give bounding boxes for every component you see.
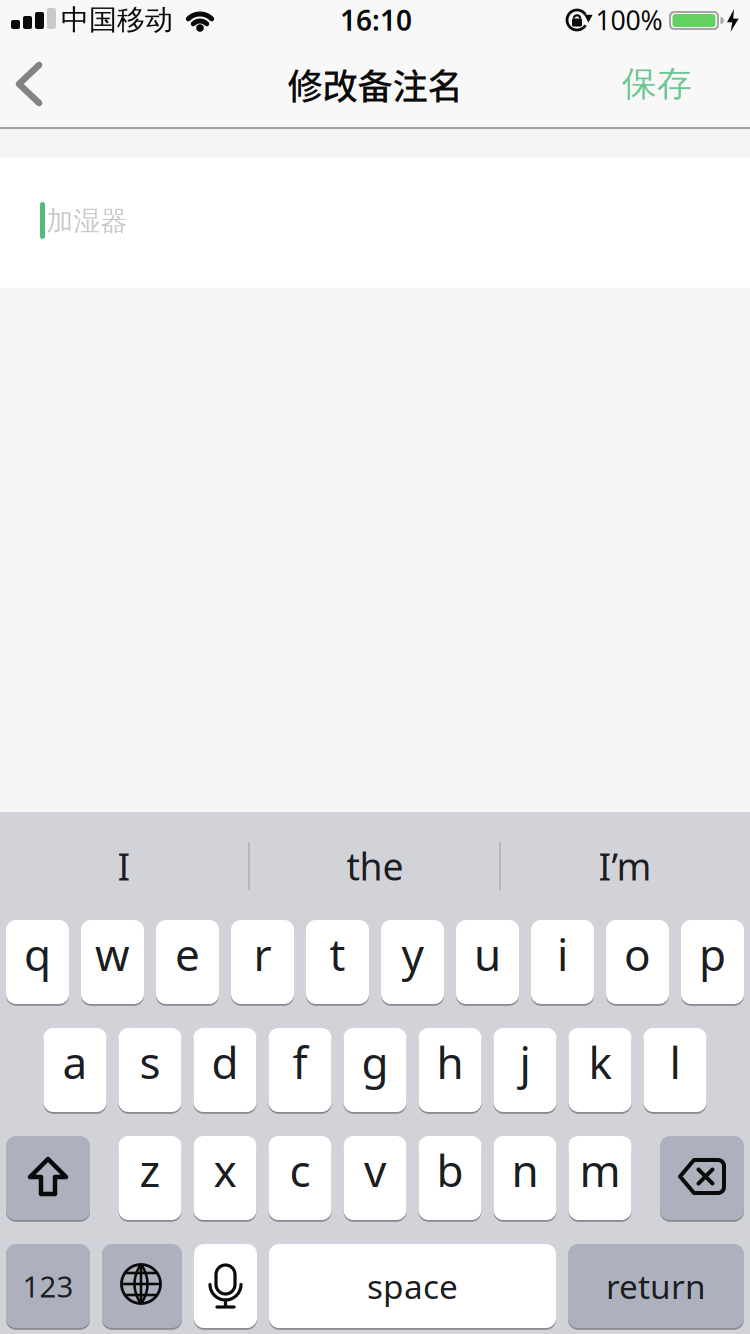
staticText: f — [292, 1033, 307, 1091]
staticText: i — [557, 925, 568, 983]
staticText: the — [346, 841, 403, 891]
staticText: 123 — [22, 1266, 73, 1305]
staticText: g — [361, 1033, 388, 1091]
staticText: w — [95, 925, 130, 983]
staticText: t — [329, 925, 345, 983]
staticText: k — [588, 1033, 611, 1091]
staticText: 中国移动 — [61, 3, 173, 37]
staticText: return — [606, 1264, 706, 1308]
staticText: d — [211, 1033, 238, 1091]
staticText: z — [139, 1141, 160, 1199]
staticText: 修改备注名 — [287, 58, 462, 110]
staticText: n — [511, 1141, 538, 1199]
staticText: 加湿器 — [46, 205, 127, 237]
staticText: u — [474, 925, 501, 983]
staticText: j — [519, 1033, 530, 1091]
staticText: l — [669, 1033, 680, 1091]
staticText: p — [699, 925, 726, 983]
staticText: s — [139, 1033, 160, 1091]
staticText: a — [62, 1033, 87, 1091]
staticText: c — [289, 1141, 310, 1199]
staticText: 100% — [595, 2, 662, 38]
staticText: m — [579, 1141, 620, 1199]
staticText: q — [24, 925, 51, 983]
staticText: 保存 — [622, 63, 692, 105]
staticText: h — [436, 1033, 463, 1091]
staticText: I — [117, 841, 130, 891]
staticText: b — [436, 1141, 463, 1199]
staticText: x — [213, 1141, 236, 1199]
staticText: e — [175, 925, 200, 983]
staticText: space — [367, 1264, 458, 1308]
staticText: I’m — [598, 841, 651, 891]
staticText: o — [624, 925, 651, 983]
staticText: y — [401, 925, 423, 983]
staticText: 16:10 — [340, 1, 412, 39]
staticText: v — [364, 1141, 386, 1199]
staticText: r — [253, 925, 271, 983]
